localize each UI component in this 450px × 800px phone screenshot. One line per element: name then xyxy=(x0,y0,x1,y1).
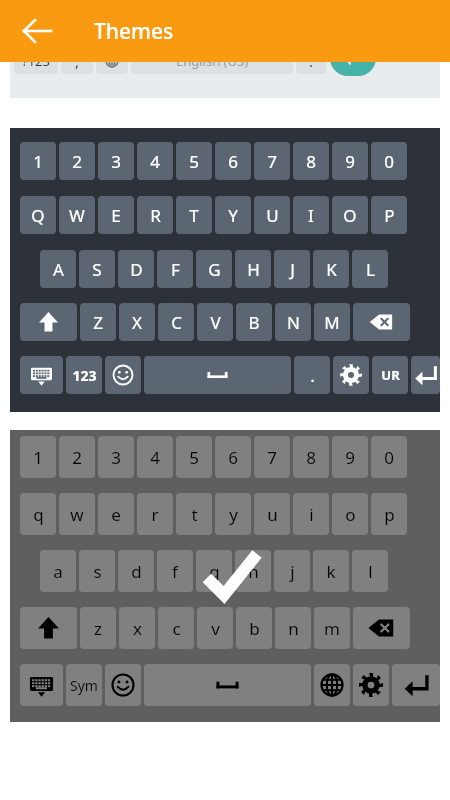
button[interactable]: UR xyxy=(372,356,408,394)
button[interactable]: p xyxy=(371,493,407,535)
button[interactable]: Backspace xyxy=(353,607,410,649)
staticText: C xyxy=(171,311,182,334)
button[interactable]: r xyxy=(137,493,173,535)
button[interactable]: F xyxy=(157,250,193,288)
button[interactable]: C xyxy=(158,303,194,341)
button[interactable]: Back xyxy=(18,12,56,50)
button[interactable]: Sym xyxy=(66,664,102,706)
button[interactable]: E xyxy=(98,196,134,234)
button[interactable]: Settings xyxy=(353,664,389,706)
button[interactable]: Q xyxy=(20,196,56,234)
button[interactable]: P xyxy=(371,196,407,234)
button[interactable]: H xyxy=(235,250,271,288)
button[interactable]: b xyxy=(236,607,272,649)
button[interactable]: 4 xyxy=(137,142,173,180)
button[interactable]: 8 xyxy=(293,142,329,180)
button[interactable]: w xyxy=(59,493,95,535)
button[interactable]: d xyxy=(118,550,154,592)
button[interactable]: q xyxy=(20,493,56,535)
button[interactable]: 5 xyxy=(176,436,212,478)
button[interactable]: R xyxy=(137,196,173,234)
button[interactable]: 1 xyxy=(10,430,440,722)
button[interactable]: 6 xyxy=(215,142,251,180)
button[interactable]: 8 xyxy=(293,436,329,478)
button[interactable]: l xyxy=(352,550,388,592)
button[interactable]: 2 xyxy=(59,142,95,180)
button[interactable]: Enter xyxy=(411,356,440,394)
button[interactable]: v xyxy=(197,607,233,649)
button[interactable]: Shift xyxy=(20,607,77,649)
button[interactable]: o xyxy=(332,493,368,535)
button[interactable]: f xyxy=(157,550,193,592)
button[interactable]: W xyxy=(59,196,95,234)
button[interactable]: U xyxy=(254,196,290,234)
button[interactable]: s xyxy=(79,550,115,592)
button[interactable]: 5 xyxy=(176,142,212,180)
button[interactable]: 9 xyxy=(332,436,368,478)
button[interactable]: c xyxy=(158,607,194,649)
button[interactable]: g xyxy=(196,550,232,592)
button[interactable]: V xyxy=(197,303,233,341)
button[interactable]: Y xyxy=(215,196,251,234)
button[interactable]: Enter xyxy=(392,664,440,706)
button[interactable]: T xyxy=(176,196,212,234)
button[interactable]: u xyxy=(254,493,290,535)
button[interactable]: i xyxy=(293,493,329,535)
button[interactable]: G xyxy=(196,250,232,288)
button[interactable]: Space xyxy=(144,664,311,706)
button[interactable]: N xyxy=(275,303,311,341)
button[interactable]: k xyxy=(313,550,349,592)
button[interactable]: I xyxy=(293,196,329,234)
button[interactable]: Hide keyboard xyxy=(20,664,63,706)
button[interactable]: y xyxy=(215,493,251,535)
button[interactable]: 2 xyxy=(59,436,95,478)
button[interactable]: B xyxy=(236,303,272,341)
button[interactable]: D xyxy=(118,250,154,288)
button[interactable]: 1 xyxy=(10,128,440,412)
button[interactable]: z xyxy=(80,607,116,649)
button[interactable]: j xyxy=(274,550,310,592)
staticText: 5 xyxy=(189,150,199,173)
button[interactable]: K xyxy=(313,250,349,288)
button[interactable]: A xyxy=(40,250,76,288)
button[interactable]: Settings xyxy=(333,356,369,394)
button[interactable]: n xyxy=(275,607,311,649)
button[interactable]: L xyxy=(352,250,388,288)
button[interactable]: 1 xyxy=(20,436,56,478)
button[interactable]: M xyxy=(314,303,350,341)
button[interactable]: Backspace xyxy=(353,303,410,341)
button[interactable]: h xyxy=(235,550,271,592)
staticText: m xyxy=(324,617,340,640)
button[interactable]: 3 xyxy=(98,142,134,180)
button[interactable]: 3 xyxy=(98,436,134,478)
button[interactable]: Shift xyxy=(20,303,77,341)
button[interactable]: Language xyxy=(314,664,350,706)
button[interactable]: Hide keyboard xyxy=(20,356,63,394)
button[interactable]: x xyxy=(119,607,155,649)
button[interactable]: 123 xyxy=(66,356,102,394)
button[interactable]: S xyxy=(79,250,115,288)
button[interactable]: t xyxy=(176,493,212,535)
button[interactable]: Emoji xyxy=(105,664,141,706)
button[interactable]: Emoji xyxy=(105,356,141,394)
button[interactable]: 0 xyxy=(371,142,407,180)
button[interactable]: 1 xyxy=(20,142,56,180)
button[interactable]: O xyxy=(332,196,368,234)
button[interactable]: Z xyxy=(80,303,116,341)
button[interactable]: J xyxy=(274,250,310,288)
button[interactable]: m xyxy=(314,607,350,649)
button[interactable]: e xyxy=(98,493,134,535)
button[interactable]: 7 xyxy=(254,142,290,180)
button[interactable]: 9 xyxy=(332,142,368,180)
button[interactable]: 7 xyxy=(254,436,290,478)
button[interactable]: . xyxy=(294,356,330,394)
button[interactable]: 0 xyxy=(371,436,407,478)
staticText: A xyxy=(53,258,64,281)
button[interactable]: a xyxy=(40,550,76,592)
button[interactable]: X xyxy=(119,303,155,341)
button[interactable]: ?123 xyxy=(10,62,440,98)
staticText: I xyxy=(308,204,314,227)
button[interactable]: 4 xyxy=(137,436,173,478)
button[interactable]: 6 xyxy=(215,436,251,478)
button[interactable]: Space xyxy=(144,356,291,394)
